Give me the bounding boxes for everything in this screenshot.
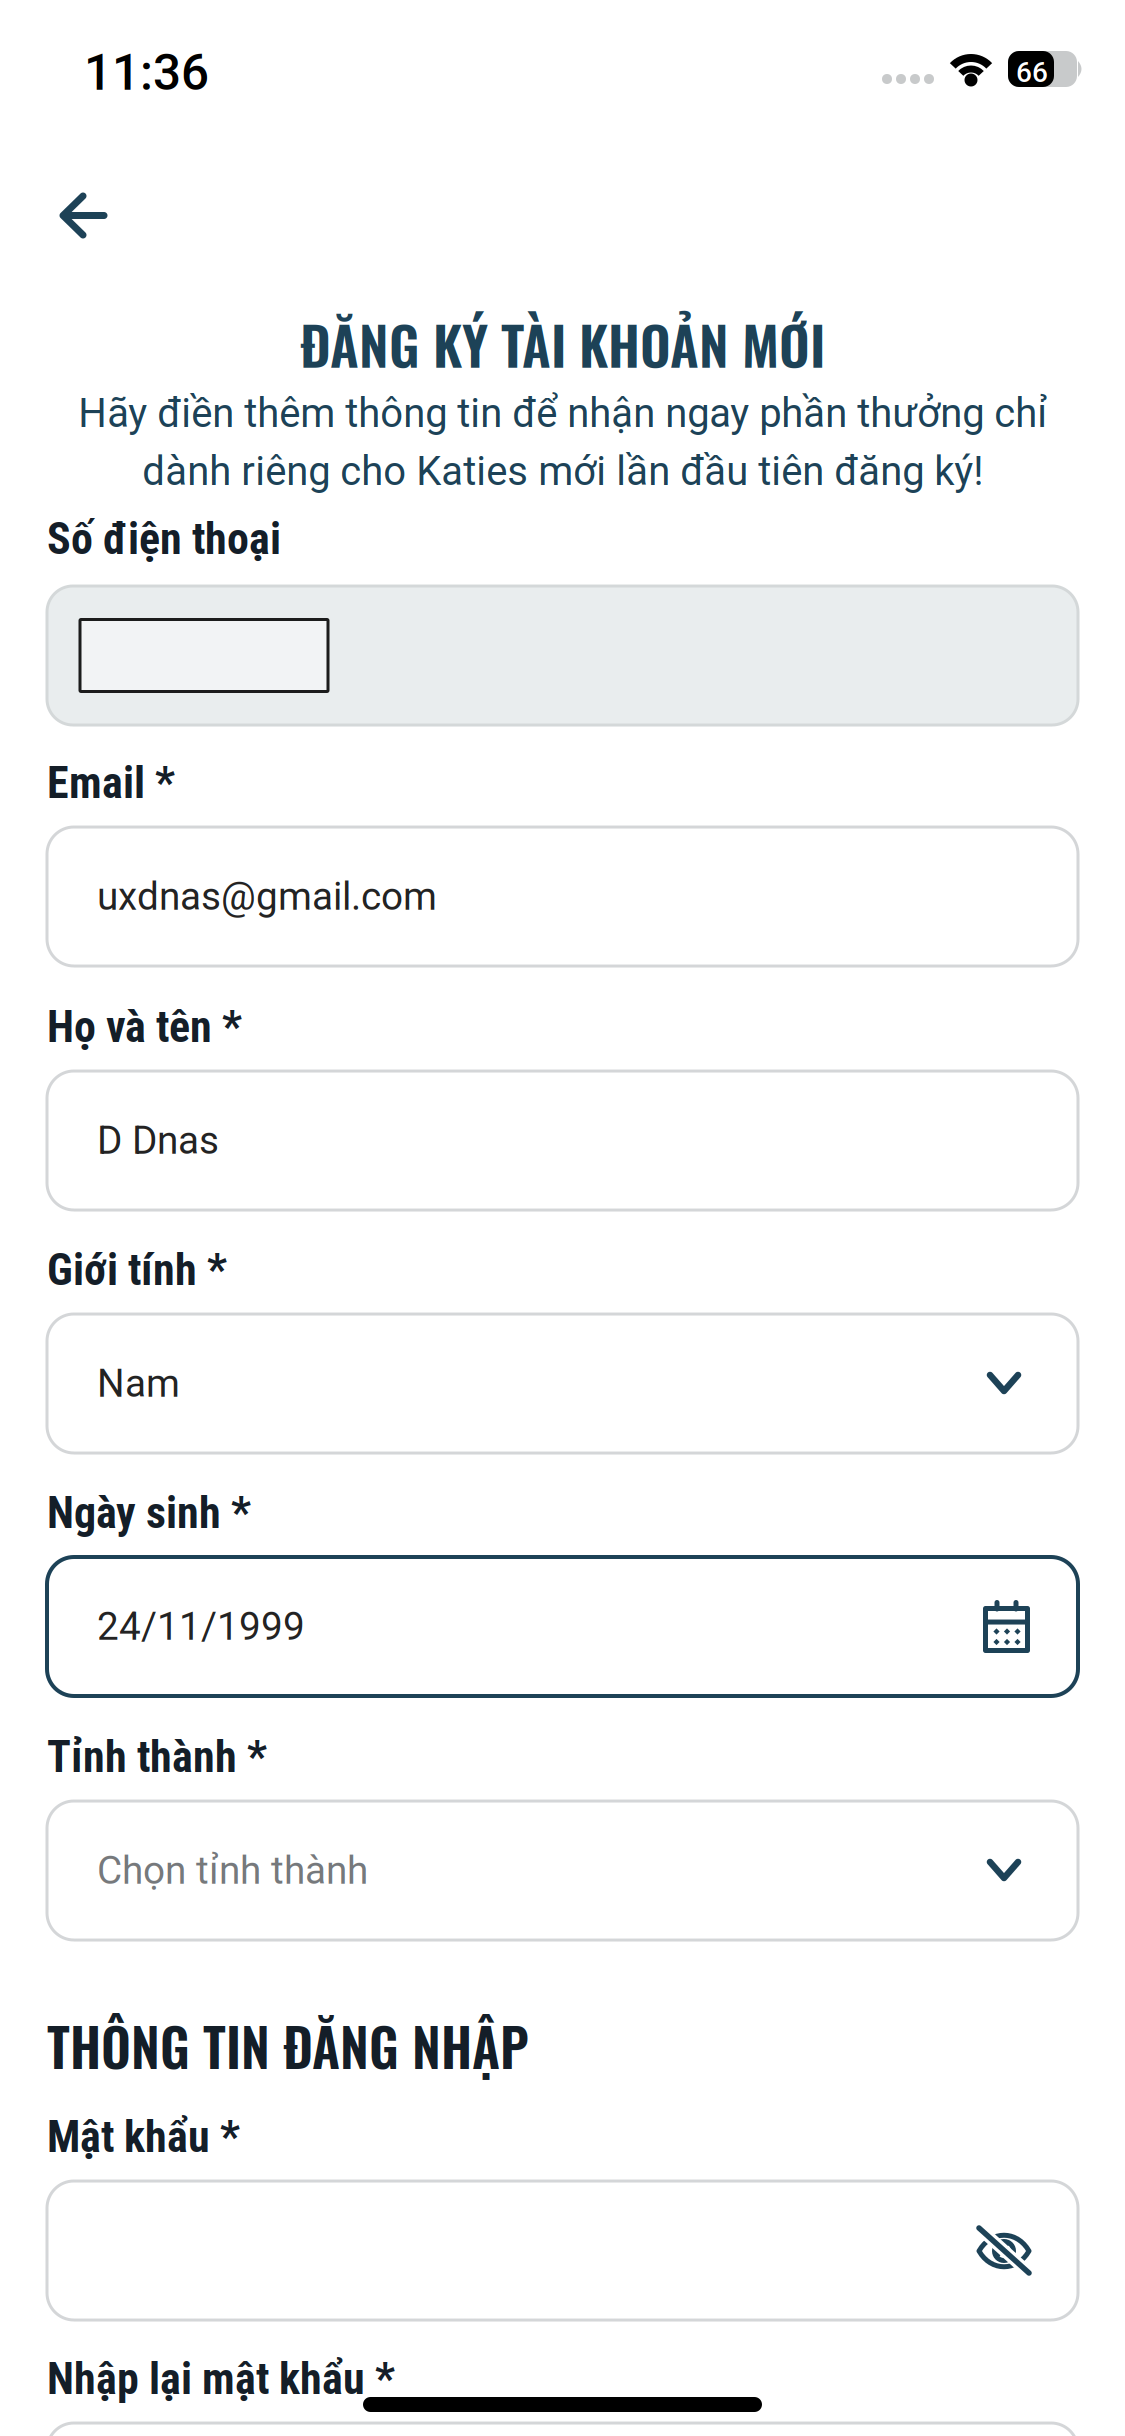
button[interactable]: Tỉnh thành * bbox=[47, 1735, 1078, 1940]
button[interactable]: Ngày sinh * bbox=[47, 1491, 1078, 1696]
button[interactable]: Giới tính * bbox=[47, 1248, 1078, 1453]
staticText: Mật khẩu * bbox=[47, 2111, 240, 2163]
staticText: Nhập lại mật khẩu * bbox=[47, 2353, 395, 2405]
staticText: Chọn tỉnh thành bbox=[97, 1848, 368, 1893]
staticText: 24/11/1999 bbox=[97, 1604, 305, 1649]
staticText: Họ và tên * bbox=[47, 1001, 242, 1053]
staticText: Ngày sinh * bbox=[47, 1487, 251, 1539]
staticText: 11:36 bbox=[84, 44, 209, 102]
staticText: D Dnas bbox=[97, 1118, 219, 1163]
staticText: Giới tính * bbox=[47, 1244, 227, 1296]
staticText: Nam bbox=[97, 1361, 180, 1406]
staticText: uxdnas@gmail.com bbox=[97, 874, 437, 919]
staticText: Số điện thoại bbox=[47, 513, 281, 565]
staticText: THÔNG TIN ĐĂNG NHẬP bbox=[47, 2007, 529, 2084]
staticText: Tỉnh thành * bbox=[47, 1731, 267, 1783]
staticText: Email * bbox=[47, 757, 175, 809]
staticText: ĐĂNG KÝ TÀI KHOẢN MỚI bbox=[300, 304, 825, 383]
button[interactable]: Back bbox=[0, 177, 170, 254]
staticText: Hãy điền thêm thông tin để nhận ngay phầ… bbox=[78, 390, 1047, 495]
staticText: 66 bbox=[1016, 56, 1048, 89]
